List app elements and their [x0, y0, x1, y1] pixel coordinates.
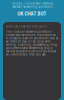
staticText: Helpful, honest and harmless assistant a… [11, 2, 52, 8]
staticText: Why I am chat bot is so good [6, 25, 47, 28]
staticText: UK CHAT BOT [17, 11, 46, 16]
staticText: The chat bot answers questions clearly a… [6, 30, 58, 56]
